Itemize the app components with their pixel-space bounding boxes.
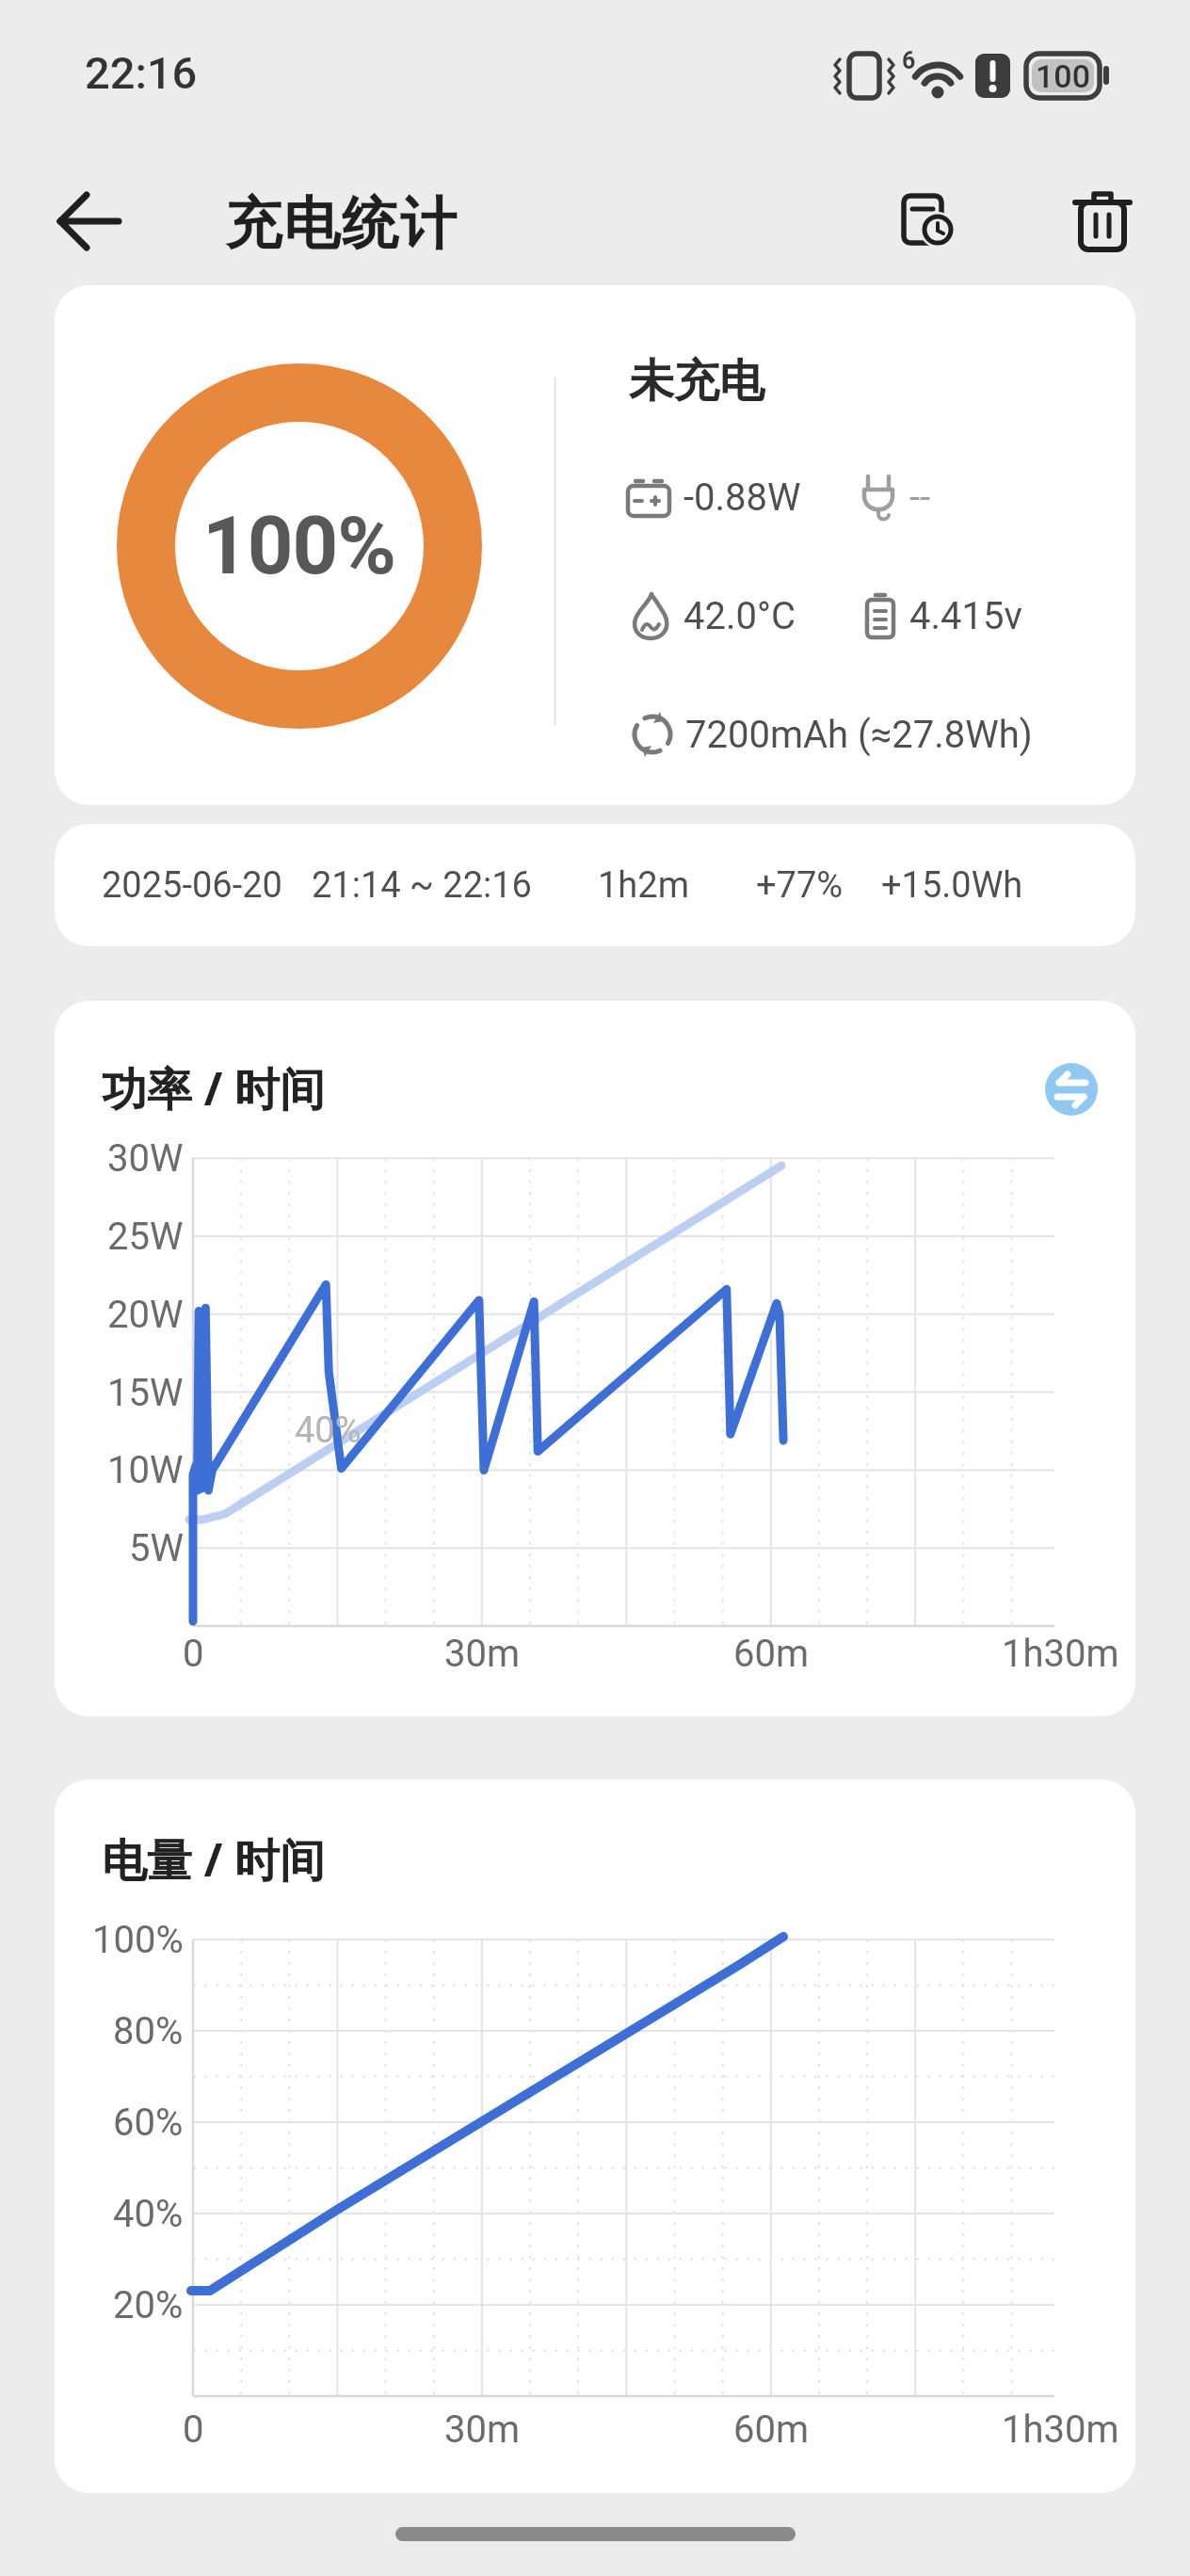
- staticText: 100%: [92, 1918, 184, 1962]
- staticText: -0.88W: [683, 475, 801, 520]
- staticText: 30W: [107, 1136, 184, 1181]
- staticText: 80%: [113, 2009, 184, 2053]
- staticText: 60%: [113, 2101, 184, 2145]
- staticText: --: [909, 475, 931, 520]
- staticText: 30m: [444, 2407, 521, 2452]
- staticText: 1h30m: [1002, 1632, 1119, 1676]
- staticText: 30m: [444, 1632, 521, 1676]
- button[interactable]: [1058, 177, 1147, 266]
- staticText: +15.0Wh: [881, 864, 1023, 907]
- staticText: 充电统计: [224, 188, 458, 260]
- button[interactable]: 2025-06-20: [55, 824, 1135, 946]
- staticText: 25W: [107, 1215, 184, 1259]
- staticText: 电量 / 时间: [102, 1828, 325, 1891]
- staticText: 1h2m: [598, 864, 689, 907]
- staticText: 40%: [295, 1409, 362, 1452]
- staticText: 20%: [113, 2283, 184, 2327]
- staticText: 2025-06-20: [102, 864, 282, 907]
- staticText: 60m: [733, 1632, 810, 1676]
- staticText: 6: [902, 47, 916, 74]
- button[interactable]: [1037, 1055, 1105, 1123]
- staticText: 20W: [107, 1293, 184, 1337]
- staticText: 4.415v: [909, 594, 1022, 638]
- staticText: 1h30m: [1002, 2407, 1119, 2452]
- staticText: +77%: [756, 864, 844, 907]
- staticText: 7200mAh (≈27.8Wh): [685, 713, 1033, 757]
- staticText: 功率 / 时间: [102, 1057, 325, 1119]
- staticText: 0: [183, 1632, 204, 1676]
- staticText: 21:14 ~ 22:16: [312, 864, 532, 907]
- button[interactable]: [45, 177, 134, 266]
- staticText: 100%: [202, 499, 396, 593]
- staticText: 10W: [107, 1448, 184, 1492]
- staticText: 60m: [733, 2407, 810, 2452]
- staticText: 0: [183, 2407, 204, 2452]
- staticText: 5W: [129, 1526, 184, 1570]
- staticText: 未充电: [629, 353, 764, 410]
- button[interactable]: [883, 177, 972, 266]
- staticText: 22:16: [85, 47, 198, 99]
- staticText: 42.0°C: [683, 594, 796, 638]
- staticText: 15W: [107, 1371, 184, 1415]
- staticText: 40%: [113, 2192, 184, 2236]
- staticText: 100: [1036, 57, 1090, 95]
